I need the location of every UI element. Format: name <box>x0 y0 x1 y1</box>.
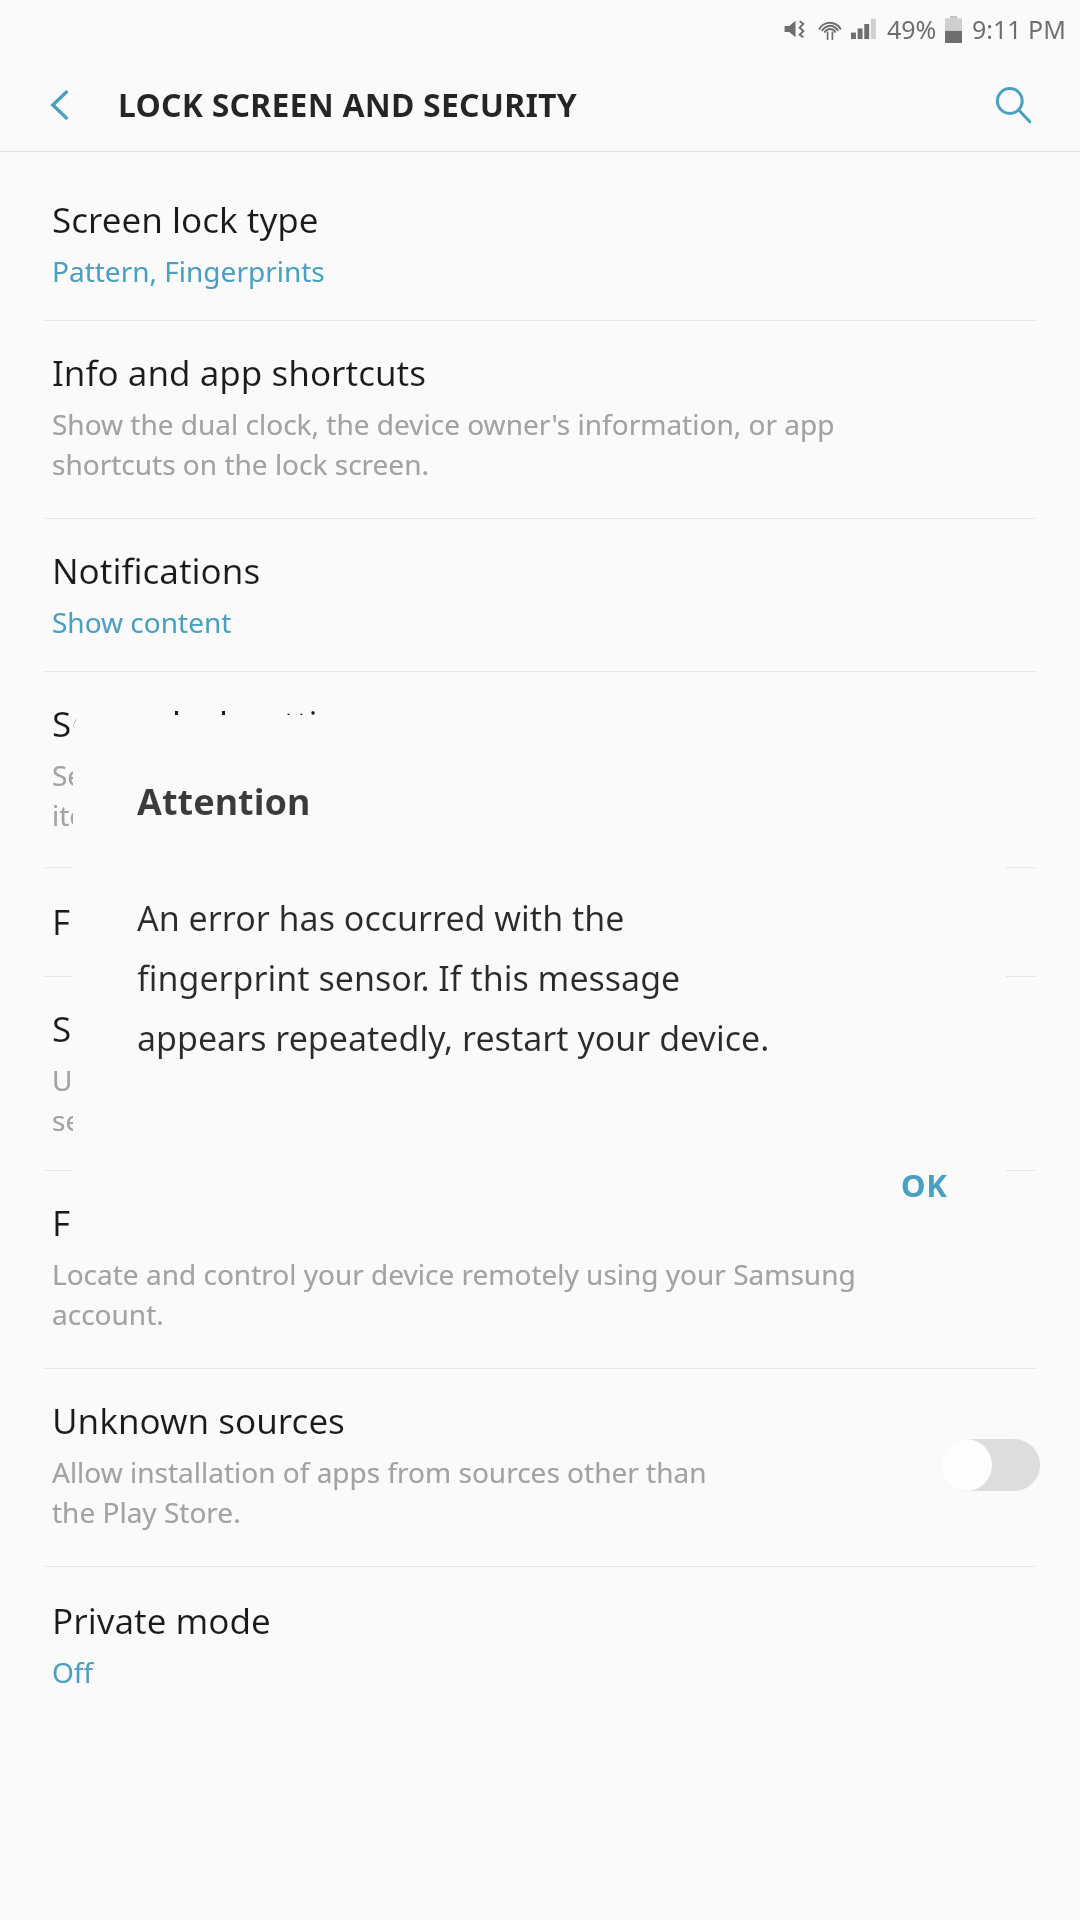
button[interactable]: Private mode <box>0 1567 1080 1721</box>
button[interactable]: Unknown sources toggle <box>940 1438 1040 1492</box>
staticText: Pattern, Fingerprints <box>52 252 325 290</box>
button[interactable]: Secure Folder <box>0 977 1080 1170</box>
staticText: Locate and control your device remotely … <box>52 1255 856 1334</box>
staticText: LOCK SCREEN AND SECURITY <box>118 83 577 127</box>
button[interactable]: Search <box>978 70 1048 140</box>
staticText: Private mode <box>52 1597 271 1645</box>
button[interactable]: Screen lock type <box>0 174 1080 320</box>
staticText: Allow installation of apps from sources … <box>52 1453 707 1532</box>
staticText: Fingerprints <box>52 898 253 946</box>
staticText: 49% <box>887 12 937 46</box>
staticText: OK <box>901 1164 948 1206</box>
staticText: Secure Folder <box>52 1005 277 1053</box>
staticText: Show the dual clock, the device owner's … <box>52 405 835 484</box>
staticText: Attention <box>137 777 311 826</box>
staticText: An error has occurred with the fingerpri… <box>137 895 787 1061</box>
staticText: Unknown sources <box>52 1397 345 1445</box>
staticText: Info and app shortcuts <box>52 349 426 397</box>
button[interactable]: Notifications <box>0 519 1080 671</box>
staticText: Show content <box>52 603 232 641</box>
button[interactable]: Unknown sources <box>0 1369 1080 1566</box>
staticText: Off <box>52 1653 94 1691</box>
staticText: Set the lock time and other items for th… <box>52 756 407 835</box>
staticText: Find My Mobile <box>52 1199 303 1247</box>
button[interactable]: Back <box>28 72 94 138</box>
button[interactable]: Fingerprints <box>0 868 1080 976</box>
staticText: 9:11 PM <box>972 12 1066 46</box>
button[interactable]: Find My Mobile <box>0 1171 1080 1368</box>
staticText: Use Secure Folder to keep your apps and … <box>52 1061 656 1140</box>
button[interactable]: Info and app shortcuts <box>0 321 1080 518</box>
staticText: Screen lock type <box>52 196 319 244</box>
staticText: Secure lock settings <box>52 700 378 748</box>
staticText: Notifications <box>52 547 261 595</box>
button[interactable]: OK <box>867 1144 982 1226</box>
button[interactable]: Secure lock settings <box>0 672 1080 867</box>
